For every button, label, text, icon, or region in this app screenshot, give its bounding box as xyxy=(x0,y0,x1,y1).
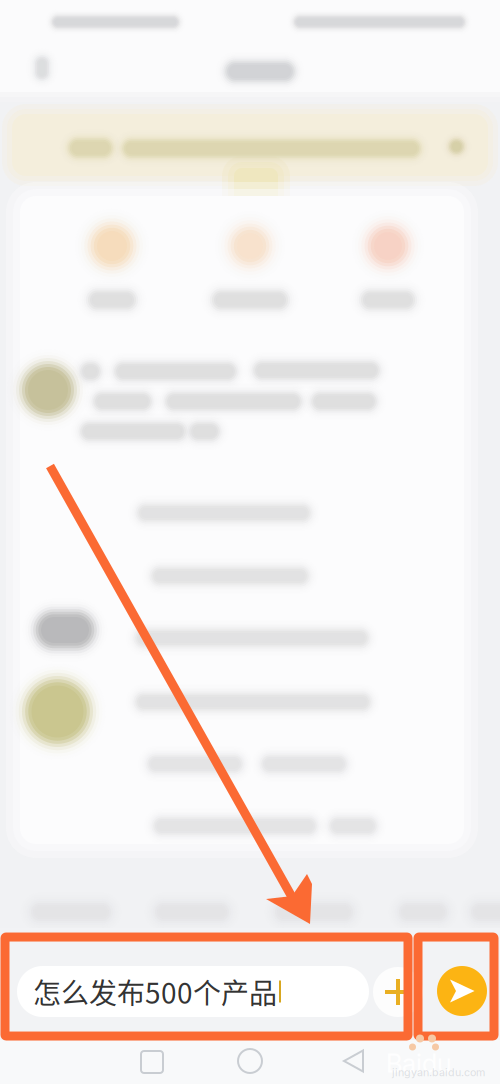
button[interactable]: Quick reply xyxy=(146,894,238,930)
button[interactable]: More options xyxy=(372,966,424,1018)
button[interactable]: Message input field xyxy=(17,966,369,1017)
button[interactable]: Quick entry xyxy=(324,212,452,316)
button[interactable]: Quick entry xyxy=(48,212,176,316)
button[interactable]: Quick reply xyxy=(22,894,120,930)
button[interactable]: Quick reply xyxy=(266,894,362,930)
button[interactable]: Send xyxy=(436,965,488,1017)
button[interactable]: Back xyxy=(332,1047,376,1075)
button[interactable]: Quick reply xyxy=(462,894,500,930)
button[interactable]: Back xyxy=(20,48,64,88)
button[interactable]: Recent apps xyxy=(130,1048,174,1076)
staticText: 怎么发布500个产品 xyxy=(33,971,277,1012)
staticText: jingyan.baidu.com xyxy=(392,1066,485,1079)
button[interactable]: Home xyxy=(228,1047,272,1075)
button[interactable]: Quick reply xyxy=(390,894,456,930)
button[interactable]: Quick entry xyxy=(186,212,314,316)
staticText: Baidu xyxy=(386,1048,452,1079)
